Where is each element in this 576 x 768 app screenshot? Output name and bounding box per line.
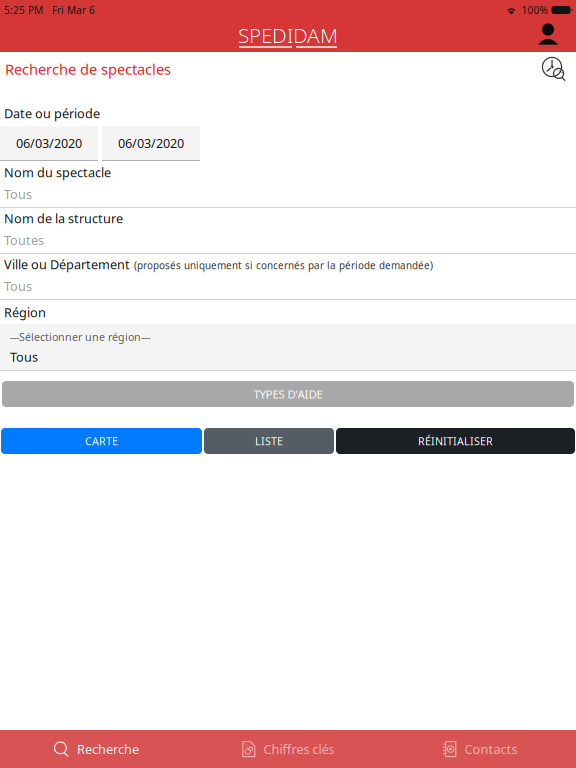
staticText: Nom du spectacle	[4, 164, 111, 181]
staticText: 100%	[521, 3, 547, 17]
button[interactable]: Tous	[0, 181, 576, 207]
button[interactable]: 06/03/2020	[102, 126, 200, 161]
staticText: Tous	[4, 185, 32, 203]
staticText: TYPES D'AIDE	[253, 386, 322, 402]
button[interactable]: ---Sélectionner une région---	[0, 324, 576, 371]
staticText: RÉINITIALISER	[418, 434, 493, 448]
staticText: Région	[4, 304, 46, 321]
staticText: Ville ou Département	[4, 256, 130, 273]
button[interactable]: 06/03/2020	[0, 126, 98, 161]
staticText: Recherche	[77, 740, 139, 758]
staticText: Fri Mar 6	[43, 3, 95, 17]
button[interactable]: Recent searches	[535, 50, 573, 88]
button[interactable]: CARTE	[1, 428, 202, 454]
button[interactable]: Contacts	[384, 730, 576, 768]
button[interactable]: TYPES D'AIDE	[2, 381, 574, 407]
staticText: LISTE	[255, 434, 283, 448]
staticText: Tous	[4, 277, 32, 295]
staticText: Nom de la structure	[4, 210, 123, 227]
staticText: Tous	[10, 348, 38, 365]
button[interactable]: Recherche	[0, 730, 192, 768]
staticText: SPEDIDAM	[238, 21, 338, 49]
staticText: CARTE	[85, 434, 118, 448]
button[interactable]: Toutes	[0, 227, 576, 253]
button[interactable]: RÉINITIALISER	[336, 428, 575, 454]
staticText: Contacts	[464, 740, 517, 758]
button[interactable]: LISTE	[204, 428, 334, 454]
staticText: (proposés uniquement si concernés par la…	[134, 259, 433, 272]
staticText: 06/03/2020	[16, 134, 82, 152]
staticText: Chiffres clés	[263, 740, 334, 758]
staticText: Toutes	[4, 231, 44, 249]
staticText: Date ou période	[4, 105, 100, 122]
staticText: 5:25 PM	[4, 3, 43, 17]
button[interactable]: Tous	[0, 273, 576, 299]
staticText: ---Sélectionner une région---	[10, 330, 150, 344]
button[interactable]: Chiffres clés	[192, 730, 384, 768]
button[interactable]: Account	[529, 20, 567, 52]
staticText: Recherche de spectacles	[5, 59, 171, 79]
staticText: 06/03/2020	[118, 134, 184, 152]
